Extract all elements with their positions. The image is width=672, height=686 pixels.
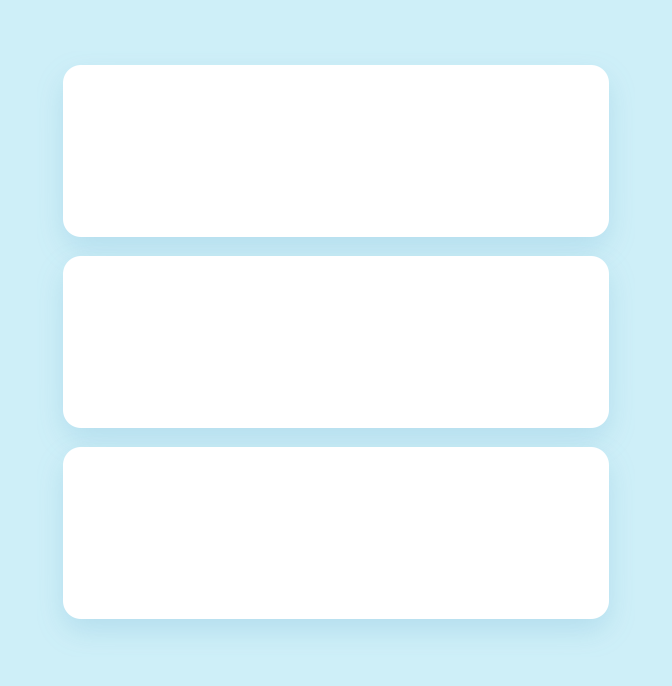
button[interactable]: Card 3 <box>63 447 609 619</box>
button[interactable]: Card 1 <box>63 65 609 237</box>
button[interactable]: Card 2 <box>63 256 609 428</box>
